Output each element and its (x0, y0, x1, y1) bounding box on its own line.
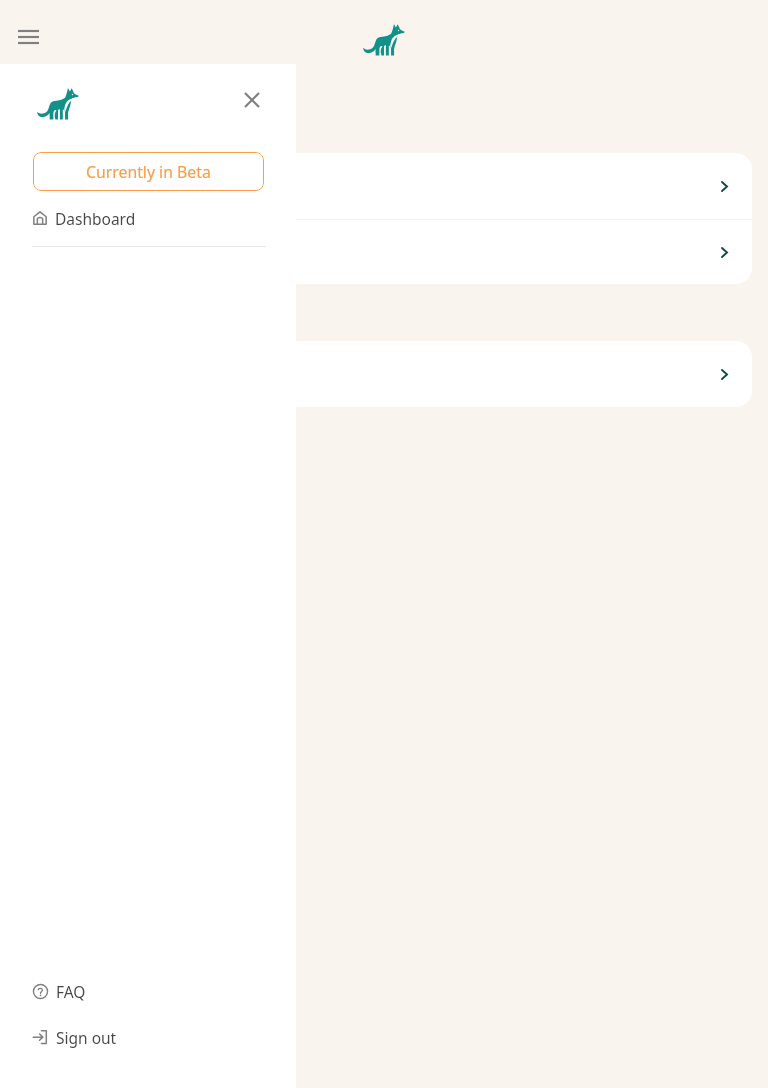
staticText: Currently in Beta (86, 161, 211, 183)
button[interactable]: FAQ (33, 975, 296, 1007)
button[interactable]: Currently in Beta (33, 152, 264, 191)
button[interactable] (16, 341, 752, 407)
staticText: Sign out (56, 1027, 117, 1048)
button[interactable] (16, 153, 752, 219)
button[interactable]: Open navigation menu (6, 10, 50, 54)
staticText: Dashboard (55, 208, 136, 229)
button[interactable] (16, 220, 752, 284)
button[interactable]: Close navigation menu (237, 85, 267, 115)
button[interactable]: Dashboard (33, 198, 296, 238)
staticText: FAQ (56, 981, 86, 1002)
button[interactable]: Sign out (33, 1021, 296, 1053)
